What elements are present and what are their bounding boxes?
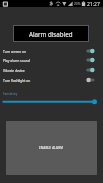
staticText: Sensitivity — [3, 92, 18, 96]
button[interactable]: Sensitivity slider — [0, 96, 103, 107]
button[interactable]: Alarm disabled — [13, 25, 89, 42]
button[interactable]: Turn screen on — [0, 46, 103, 56]
staticText: Turn screen on — [3, 49, 87, 53]
staticText: ENABLE ALARM — [39, 146, 64, 150]
staticText: Turn flashlight on — [3, 78, 87, 82]
button[interactable]: Vibrate device — [0, 65, 103, 75]
staticText: 20% — [74, 2, 81, 6]
staticText: Vibrate device — [3, 68, 87, 72]
button[interactable]: Turn flashlight on — [0, 75, 103, 85]
button[interactable]: ENABLE ALARM — [6, 121, 97, 175]
staticText: 21:27 — [87, 1, 100, 8]
staticText: Alarm disabled — [29, 30, 73, 38]
staticText: Play alarm sound — [3, 58, 87, 62]
button[interactable]: Play alarm sound — [0, 55, 103, 65]
